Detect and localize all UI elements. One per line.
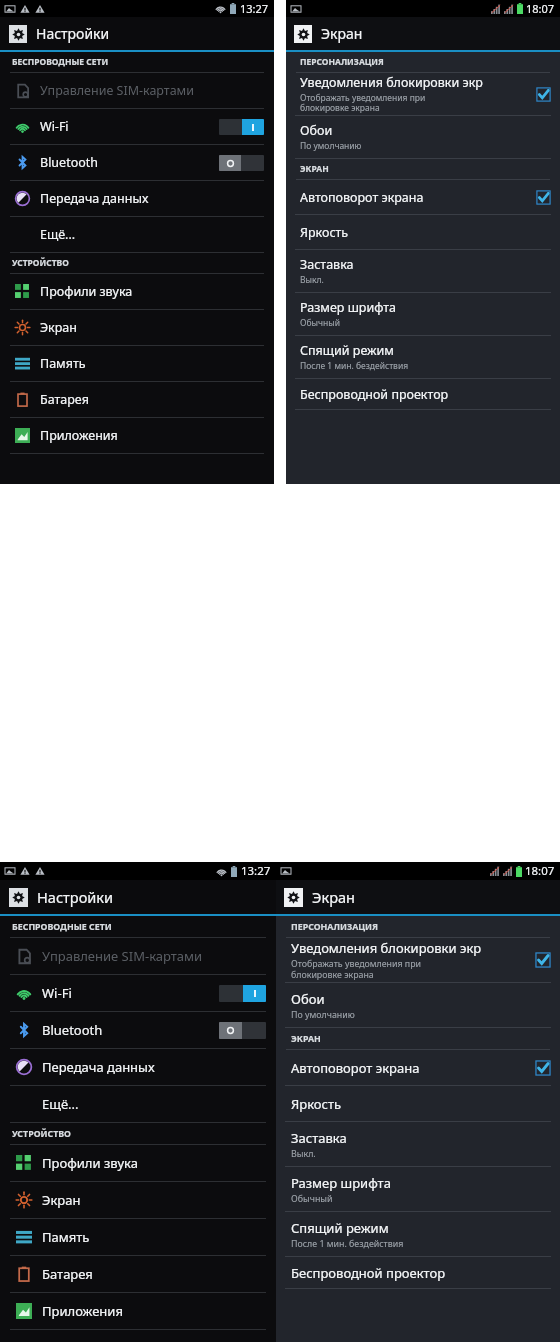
staticText: Экран	[42, 1191, 81, 1209]
button[interactable]: Настройки	[0, 880, 276, 914]
button[interactable]: Автоповорот экрана	[286, 180, 560, 215]
staticText: Экран	[312, 887, 356, 907]
button[interactable]: Checkbox checked	[536, 87, 551, 102]
staticText: Выкл.	[300, 274, 324, 286]
button[interactable]: Уведомления блокировки экр	[286, 73, 560, 116]
button[interactable]: Bluetooth	[0, 1012, 276, 1049]
staticText: Память	[42, 1228, 90, 1246]
staticText: Ещё...	[40, 226, 76, 243]
button[interactable]: Беспроводной проектор	[286, 379, 560, 410]
staticText: Выкл.	[291, 1148, 316, 1160]
staticText: Управление SIM-картами	[42, 947, 203, 965]
staticText: Батарея	[40, 391, 89, 408]
button[interactable]: Яркость	[286, 215, 560, 250]
staticText: Настройки	[37, 887, 114, 907]
button[interactable]: Switch off	[219, 1022, 266, 1039]
button[interactable]: Экран	[276, 880, 560, 914]
button[interactable]: Switch on	[219, 119, 264, 135]
button[interactable]: Заставка	[286, 250, 560, 293]
staticText: Ещё...	[42, 1095, 79, 1113]
button[interactable]: Батарея	[0, 1256, 276, 1293]
staticText: ЭКРАН	[291, 1033, 321, 1045]
staticText: 13:27	[240, 1, 269, 16]
button[interactable]: Размер шрифта	[276, 1167, 560, 1212]
button[interactable]: Wi-Fi	[0, 109, 274, 145]
staticText: Приложения	[42, 1302, 123, 1320]
button[interactable]: Размер шрифта	[286, 293, 560, 336]
button[interactable]: Switch on	[219, 985, 266, 1002]
button[interactable]: Обои	[286, 116, 560, 159]
button[interactable]: Экран	[0, 310, 274, 346]
button[interactable]: Профили звука	[0, 274, 274, 310]
button[interactable]: Управление SIM-картами	[0, 73, 274, 109]
button[interactable]: Спящий режим	[276, 1212, 560, 1257]
staticText: Заставка	[300, 256, 354, 273]
staticText: Размер шрифта	[300, 299, 397, 316]
staticText: По умолчанию	[291, 1009, 355, 1021]
staticText: После 1 мин. бездействия	[300, 360, 409, 372]
staticText: УСТРОЙСТВО	[12, 257, 69, 269]
button[interactable]: Уведомления блокировки экр	[276, 938, 560, 983]
staticText: Автоповорот экрана	[300, 189, 424, 206]
staticText: Wi-Fi	[40, 118, 69, 135]
staticText: Размер шрифта	[291, 1174, 391, 1192]
button[interactable]: Автоповорот экрана	[276, 1050, 560, 1086]
button[interactable]: Checkbox checked	[536, 190, 551, 205]
button[interactable]: Ещё...	[0, 217, 274, 253]
button[interactable]: Профили звука	[0, 1145, 276, 1182]
staticText: Яркость	[291, 1095, 342, 1113]
button[interactable]: Экран	[286, 17, 560, 50]
staticText: Экран	[40, 319, 77, 336]
button[interactable]: Checkbox checked	[535, 1060, 551, 1076]
staticText: Яркость	[300, 224, 349, 241]
button[interactable]: Батарея	[0, 382, 274, 418]
staticText: БЕСПРОВОДНЫЕ СЕТИ	[12, 56, 109, 68]
staticText: 13:27	[241, 863, 271, 879]
staticText: По умолчанию	[300, 140, 362, 152]
staticText: Отображать уведомления при блокировке эк…	[291, 958, 422, 981]
button[interactable]: Передача данных	[0, 181, 274, 217]
button[interactable]: Bluetooth	[0, 145, 274, 181]
button[interactable]: Настройки	[0, 17, 274, 50]
staticText: Батарея	[42, 1265, 93, 1283]
staticText: Отображать уведомления при блокировке эк…	[300, 92, 426, 114]
staticText: Уведомления блокировки экр	[300, 74, 483, 91]
button[interactable]: Передача данных	[0, 1049, 276, 1086]
button[interactable]: Управление SIM-картами	[0, 938, 276, 975]
button[interactable]: Память	[0, 346, 274, 382]
staticText: Настройки	[36, 24, 110, 43]
button[interactable]: Приложения	[0, 1293, 276, 1330]
staticText: ЭКРАН	[300, 163, 329, 175]
staticText: Профили звука	[40, 283, 133, 300]
staticText: Автоповорот экрана	[291, 1059, 420, 1077]
staticText: Управление SIM-картами	[40, 82, 194, 99]
staticText: Передача данных	[40, 190, 149, 207]
staticText: 18:07	[526, 1, 555, 16]
staticText: Экран	[321, 24, 363, 43]
button[interactable]: Заставка	[276, 1122, 560, 1167]
button[interactable]: Яркость	[276, 1086, 560, 1122]
staticText: УСТРОЙСТВО	[12, 1128, 71, 1140]
staticText: Приложения	[40, 427, 118, 444]
button[interactable]: Ещё...	[0, 1086, 276, 1123]
button[interactable]: Checkbox checked	[535, 952, 551, 968]
staticText: Заставка	[291, 1129, 347, 1147]
button[interactable]: Память	[0, 1219, 276, 1256]
staticText: Беспроводной проектор	[291, 1264, 446, 1282]
button[interactable]: Wi-Fi	[0, 975, 276, 1012]
button[interactable]: Спящий режим	[286, 336, 560, 379]
staticText: Спящий режим	[291, 1219, 389, 1237]
staticText: После 1 мин. бездействия	[291, 1238, 404, 1250]
button[interactable]: Экран	[0, 1182, 276, 1219]
staticText: Спящий режим	[300, 342, 394, 359]
staticText: Wi-Fi	[42, 984, 72, 1002]
button[interactable]: Приложения	[0, 418, 274, 454]
staticText: Обои	[300, 122, 333, 139]
staticText: БЕСПРОВОДНЫЕ СЕТИ	[12, 921, 112, 933]
staticText: Передача данных	[42, 1058, 155, 1076]
button[interactable]: Беспроводной проектор	[276, 1257, 560, 1289]
button[interactable]: Switch off	[219, 155, 264, 171]
button[interactable]: Обои	[276, 983, 560, 1028]
staticText: Уведомления блокировки экр	[291, 939, 482, 957]
staticText: ПЕРСОНАЛИЗАЦИЯ	[300, 56, 384, 68]
